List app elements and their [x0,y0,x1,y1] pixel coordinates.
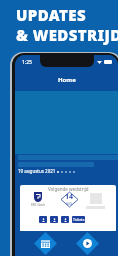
button[interactable]: Action [39,216,47,223]
button[interactable]: Action [50,216,58,223]
staticText: Tickets [73,217,85,222]
button[interactable]: Calendar [34,232,57,255]
button[interactable]: Action [61,216,69,223]
staticText: & WEDSTRIJD [16,25,118,45]
staticText: 1:25 [22,59,32,66]
button[interactable]: Tickets [72,216,85,223]
staticText: AUG [66,202,73,206]
staticText: Volgende wedstrijd [48,186,89,192]
staticText: 20u45 [64,206,75,207]
staticText: 14 [65,192,74,202]
button[interactable]: Volgende wedstrijd [20,185,116,232]
staticText: KRC Genk [31,203,45,207]
staticText: UPDATES [16,5,86,25]
button[interactable]: Play video [76,232,99,255]
staticText: 19 augustus 2021 [18,168,56,174]
staticText: Home [58,76,76,84]
